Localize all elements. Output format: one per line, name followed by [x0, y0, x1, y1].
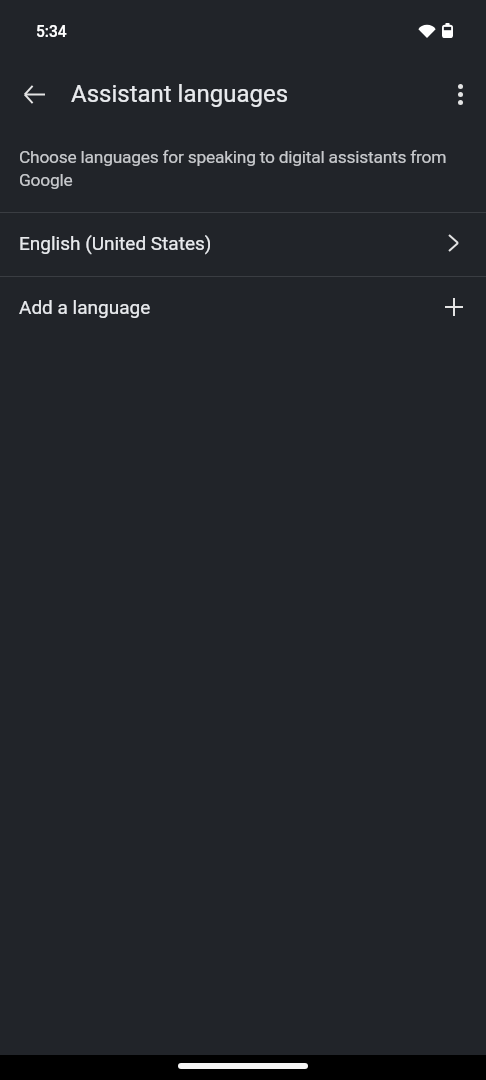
- staticText: 5:34: [36, 23, 67, 41]
- staticText: Add a language: [19, 296, 151, 318]
- staticText: Choose languages for speaking to digital…: [19, 147, 468, 190]
- button[interactable]: More options: [438, 72, 482, 116]
- staticText: Assistant languages: [71, 80, 289, 108]
- button[interactable]: English (United States): [0, 213, 486, 276]
- staticText: English (United States): [19, 232, 212, 254]
- button[interactable]: Add a language: [0, 277, 486, 340]
- button[interactable]: Navigate up: [10, 70, 58, 118]
